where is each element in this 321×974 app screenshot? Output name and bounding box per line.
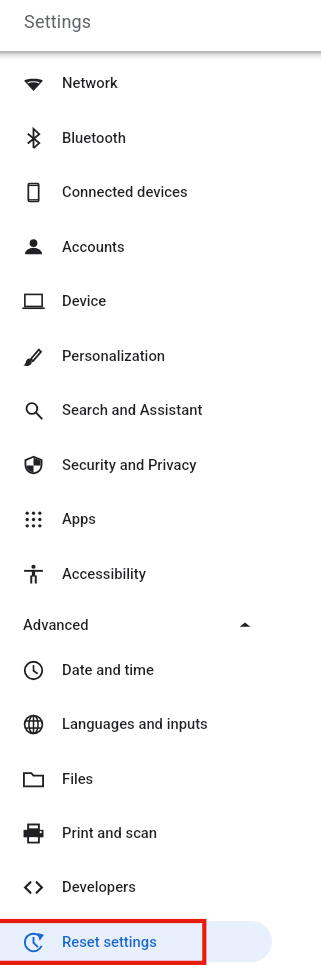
button[interactable]: Languages and inputs [0, 696, 321, 750]
staticText: Reset settings [62, 933, 157, 950]
staticText: Date and time [62, 661, 154, 678]
button[interactable]: Developers [0, 859, 321, 913]
button[interactable]: Print and scan [0, 805, 321, 859]
button[interactable]: Search and Assistant [0, 382, 321, 436]
button[interactable]: Network [0, 55, 321, 109]
staticText: Network [62, 74, 118, 91]
staticText: Connected devices [62, 183, 188, 200]
button[interactable]: Bluetooth [0, 110, 321, 164]
button[interactable]: Reset settings [0, 914, 321, 968]
staticText: Print and scan [62, 824, 158, 841]
staticText: Security and Privacy [62, 456, 197, 473]
staticText: Apps [62, 510, 96, 527]
button[interactable]: Device [0, 273, 321, 327]
button[interactable]: Accessibility [0, 546, 321, 600]
staticText: Search and Assistant [62, 401, 203, 418]
button[interactable]: Date and time [0, 642, 321, 696]
staticText: Advanced [23, 616, 89, 633]
button[interactable]: Files [0, 751, 321, 805]
button[interactable]: Security and Privacy [0, 437, 321, 491]
button[interactable]: Accounts [0, 219, 321, 273]
other: Collapse advanced [238, 618, 252, 632]
staticText: Settings [24, 11, 92, 32]
other: Highlighted item [0, 0, 321, 974]
button[interactable]: Advanced [0, 597, 321, 652]
staticText: Files [62, 770, 94, 787]
button[interactable]: Apps [0, 491, 321, 545]
button[interactable]: Personalization [0, 328, 321, 382]
staticText: Personalization [62, 347, 166, 364]
button[interactable]: Connected devices [0, 164, 321, 218]
staticText: Languages and inputs [62, 715, 208, 732]
staticText: Accessibility [62, 565, 146, 582]
staticText: Bluetooth [62, 129, 126, 146]
staticText: Accounts [62, 238, 125, 255]
staticText: Developers [62, 878, 136, 895]
staticText: Device [62, 292, 107, 309]
